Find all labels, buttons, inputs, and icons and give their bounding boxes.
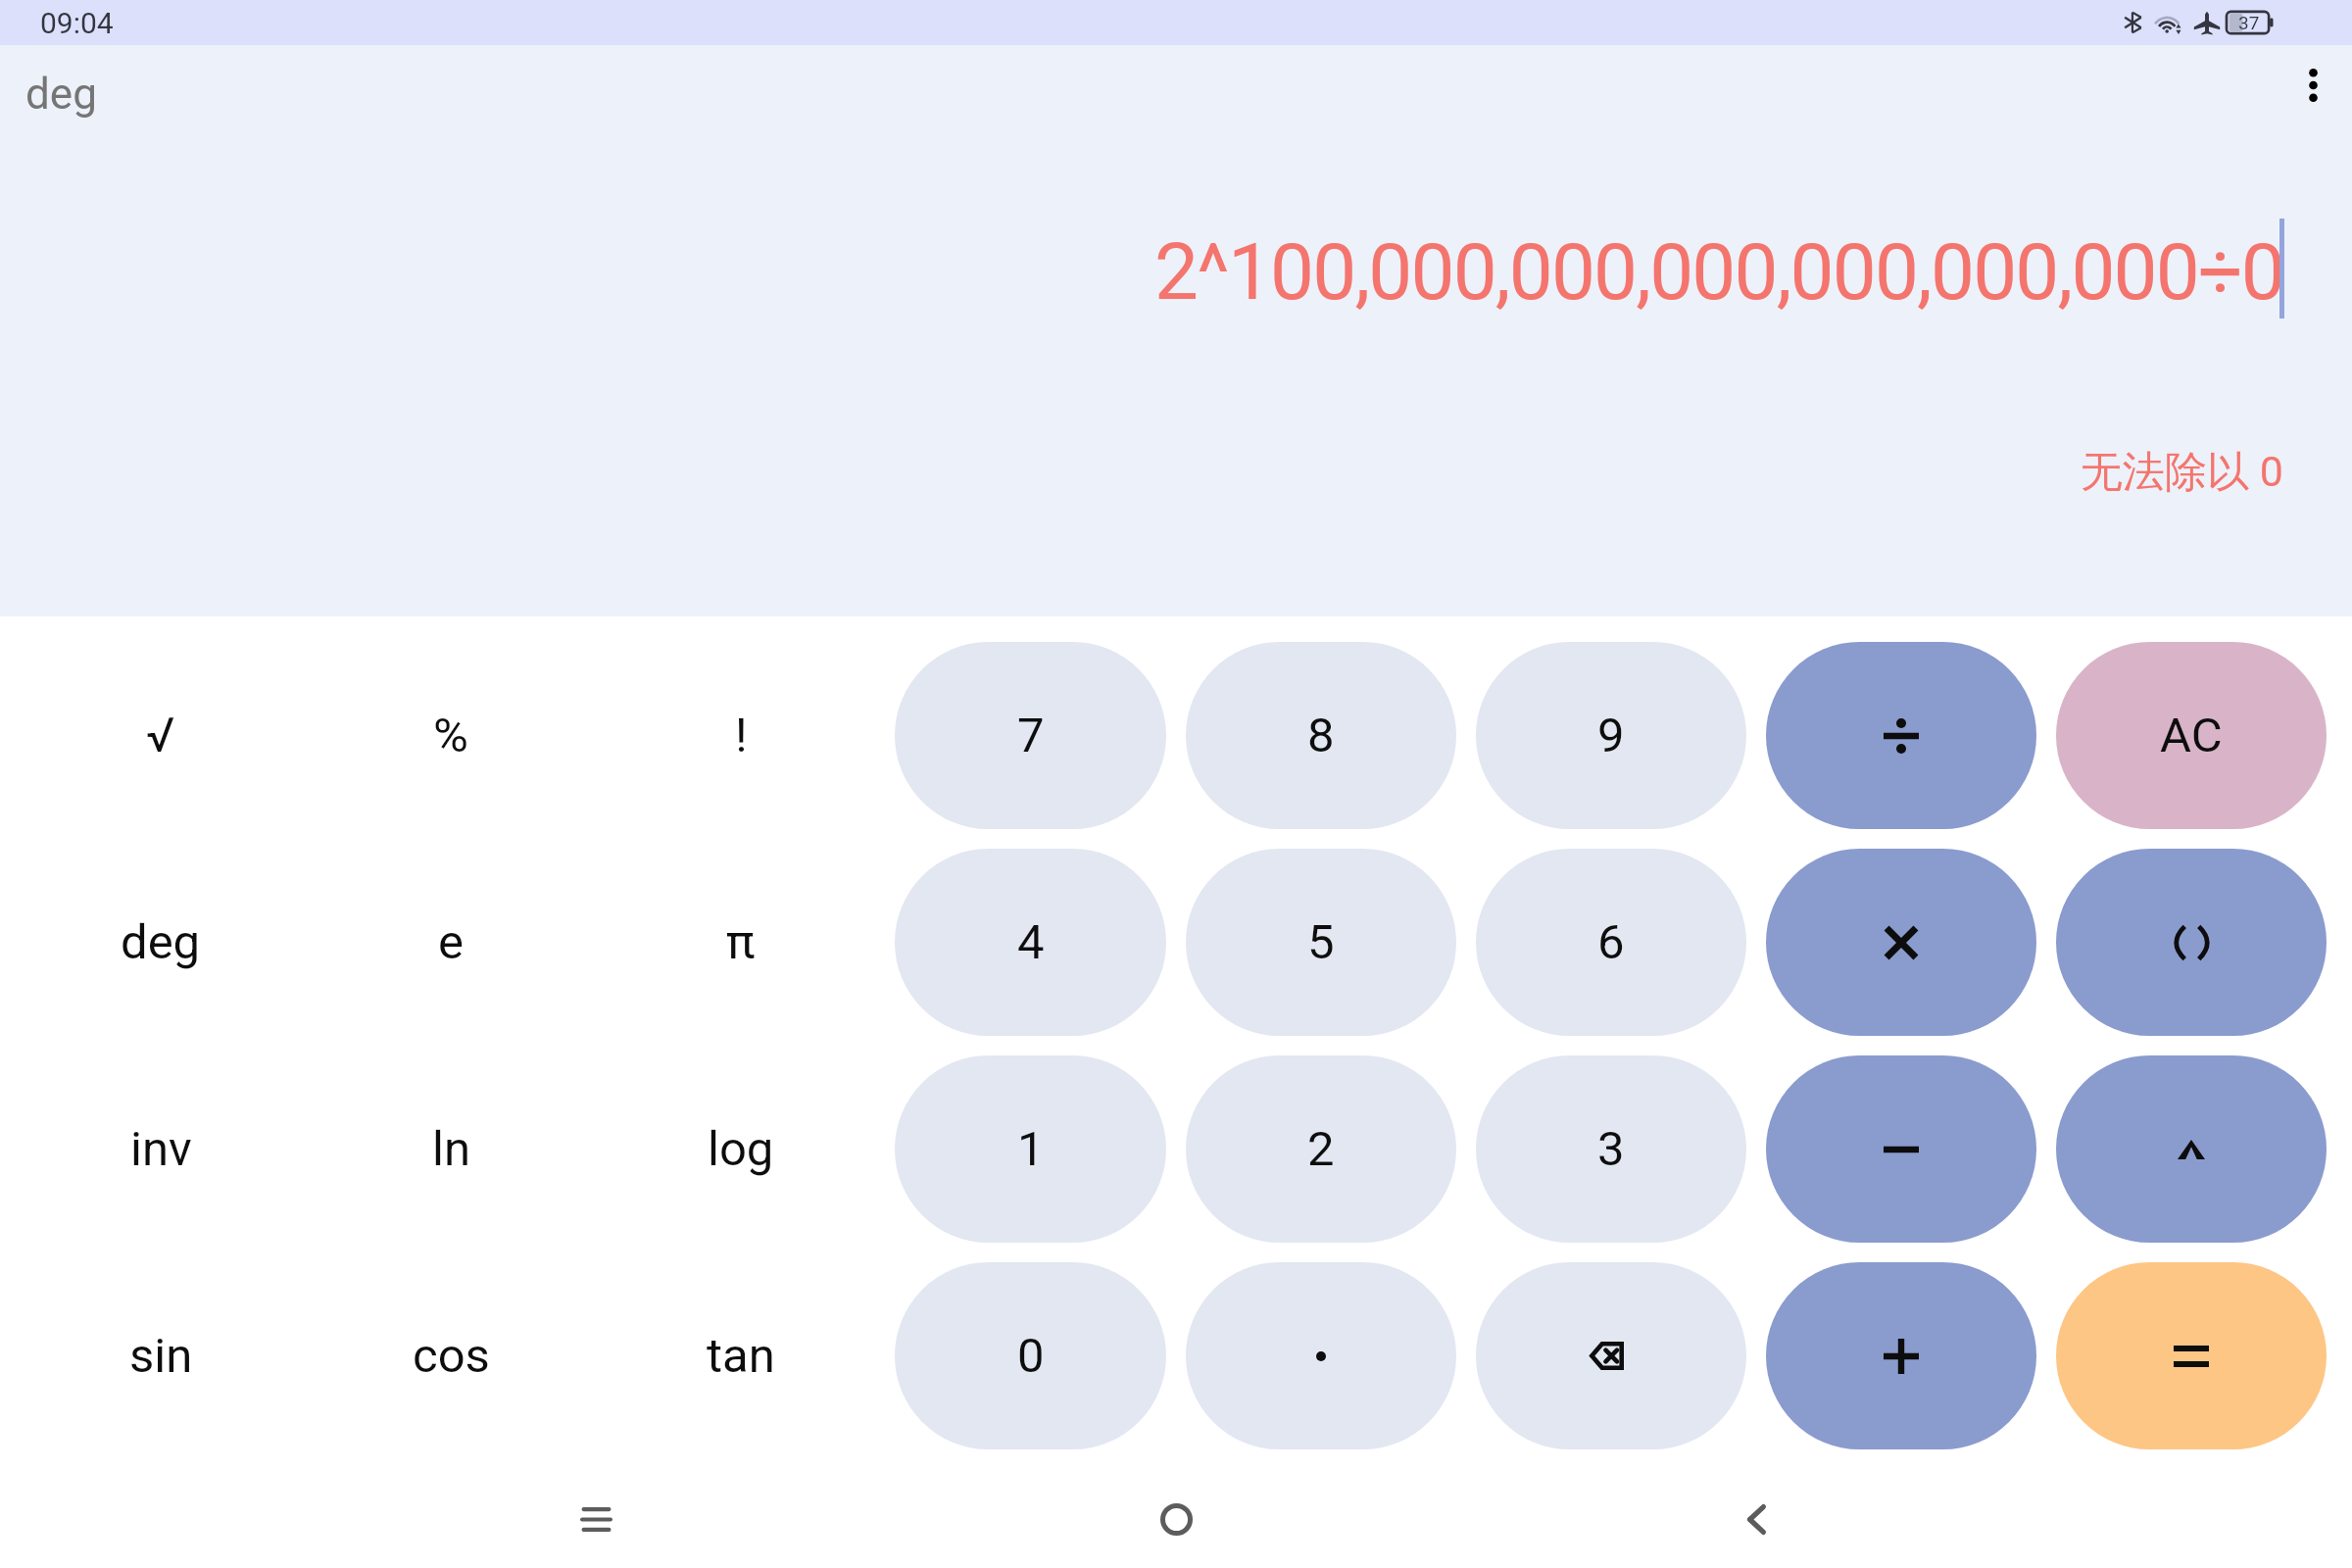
staticText: 37 — [2238, 12, 2260, 33]
button[interactable]: Backspace — [1476, 1262, 1746, 1449]
staticText: 09:04 — [40, 6, 114, 40]
button[interactable]: 9 — [1476, 642, 1746, 829]
staticText: e — [438, 914, 464, 970]
staticText: deg — [25, 69, 97, 120]
staticText: π — [726, 914, 756, 970]
staticText: 8 — [1307, 708, 1335, 763]
staticText: sin — [129, 1328, 193, 1384]
staticText: cos — [413, 1328, 490, 1384]
button[interactable]: 2 — [1186, 1055, 1456, 1243]
staticText: 7 — [1017, 708, 1045, 763]
button[interactable]: Minus — [1766, 1055, 2036, 1243]
button[interactable]: 8 — [1186, 642, 1456, 829]
button[interactable]: 1 — [895, 1055, 1166, 1243]
button[interactable]: ! — [596, 642, 886, 829]
button[interactable]: 3 — [1476, 1055, 1746, 1243]
button[interactable]: tan — [596, 1262, 886, 1449]
button[interactable]: Recent apps — [537, 1470, 655, 1568]
button[interactable]: Back — [1697, 1470, 1815, 1568]
button[interactable]: π — [596, 849, 886, 1036]
staticText: tan — [707, 1328, 775, 1384]
staticText: log — [708, 1121, 774, 1177]
button[interactable]: Home — [1117, 1470, 1235, 1568]
button[interactable]: cos — [306, 1262, 596, 1449]
button[interactable]: % — [306, 642, 596, 829]
staticText: 2 — [1307, 1121, 1335, 1177]
button[interactable]: 7 — [895, 642, 1166, 829]
staticText: % — [433, 708, 468, 763]
button[interactable]: 4 — [895, 849, 1166, 1036]
button[interactable]: deg — [16, 849, 306, 1036]
button[interactable]: Equals — [2056, 1262, 2327, 1449]
button[interactable]: AC — [2056, 642, 2327, 829]
staticText: 9 — [1597, 708, 1625, 763]
staticText: deg — [121, 914, 201, 970]
button[interactable]: log — [596, 1055, 886, 1243]
button[interactable]: More options — [2281, 54, 2344, 117]
button[interactable]: sin — [16, 1262, 306, 1449]
button[interactable]: e — [306, 849, 596, 1036]
staticText: 3 — [1597, 1121, 1625, 1177]
button[interactable]: Power — [2056, 1055, 2327, 1243]
button[interactable]: inv — [16, 1055, 306, 1243]
staticText: √ — [146, 708, 175, 763]
button[interactable]: Multiply — [1766, 849, 2036, 1036]
staticText: inv — [130, 1121, 192, 1177]
staticText: 5 — [1307, 914, 1335, 970]
button[interactable]: Plus — [1766, 1262, 2036, 1449]
button[interactable]: Parentheses — [2056, 849, 2327, 1036]
button[interactable]: 6 — [1476, 849, 1746, 1036]
button[interactable]: 5 — [1186, 849, 1456, 1036]
staticText: 4 — [1017, 914, 1045, 970]
staticText: ln — [432, 1121, 470, 1177]
button[interactable]: √ — [16, 642, 306, 829]
staticText: 1 — [1017, 1121, 1045, 1177]
button[interactable]: Decimal point — [1186, 1262, 1456, 1449]
staticText: 2^100,000,000,000,000,000,000÷0 — [1154, 226, 2283, 318]
button[interactable]: Divide — [1766, 642, 2036, 829]
staticText: 6 — [1597, 914, 1625, 970]
staticText: ! — [735, 708, 748, 763]
button[interactable]: ln — [306, 1055, 596, 1243]
staticText: 无法除以 0 — [2081, 446, 2283, 499]
staticText: 0 — [1017, 1328, 1045, 1384]
staticText: AC — [2160, 708, 2223, 763]
button[interactable]: 0 — [895, 1262, 1166, 1449]
